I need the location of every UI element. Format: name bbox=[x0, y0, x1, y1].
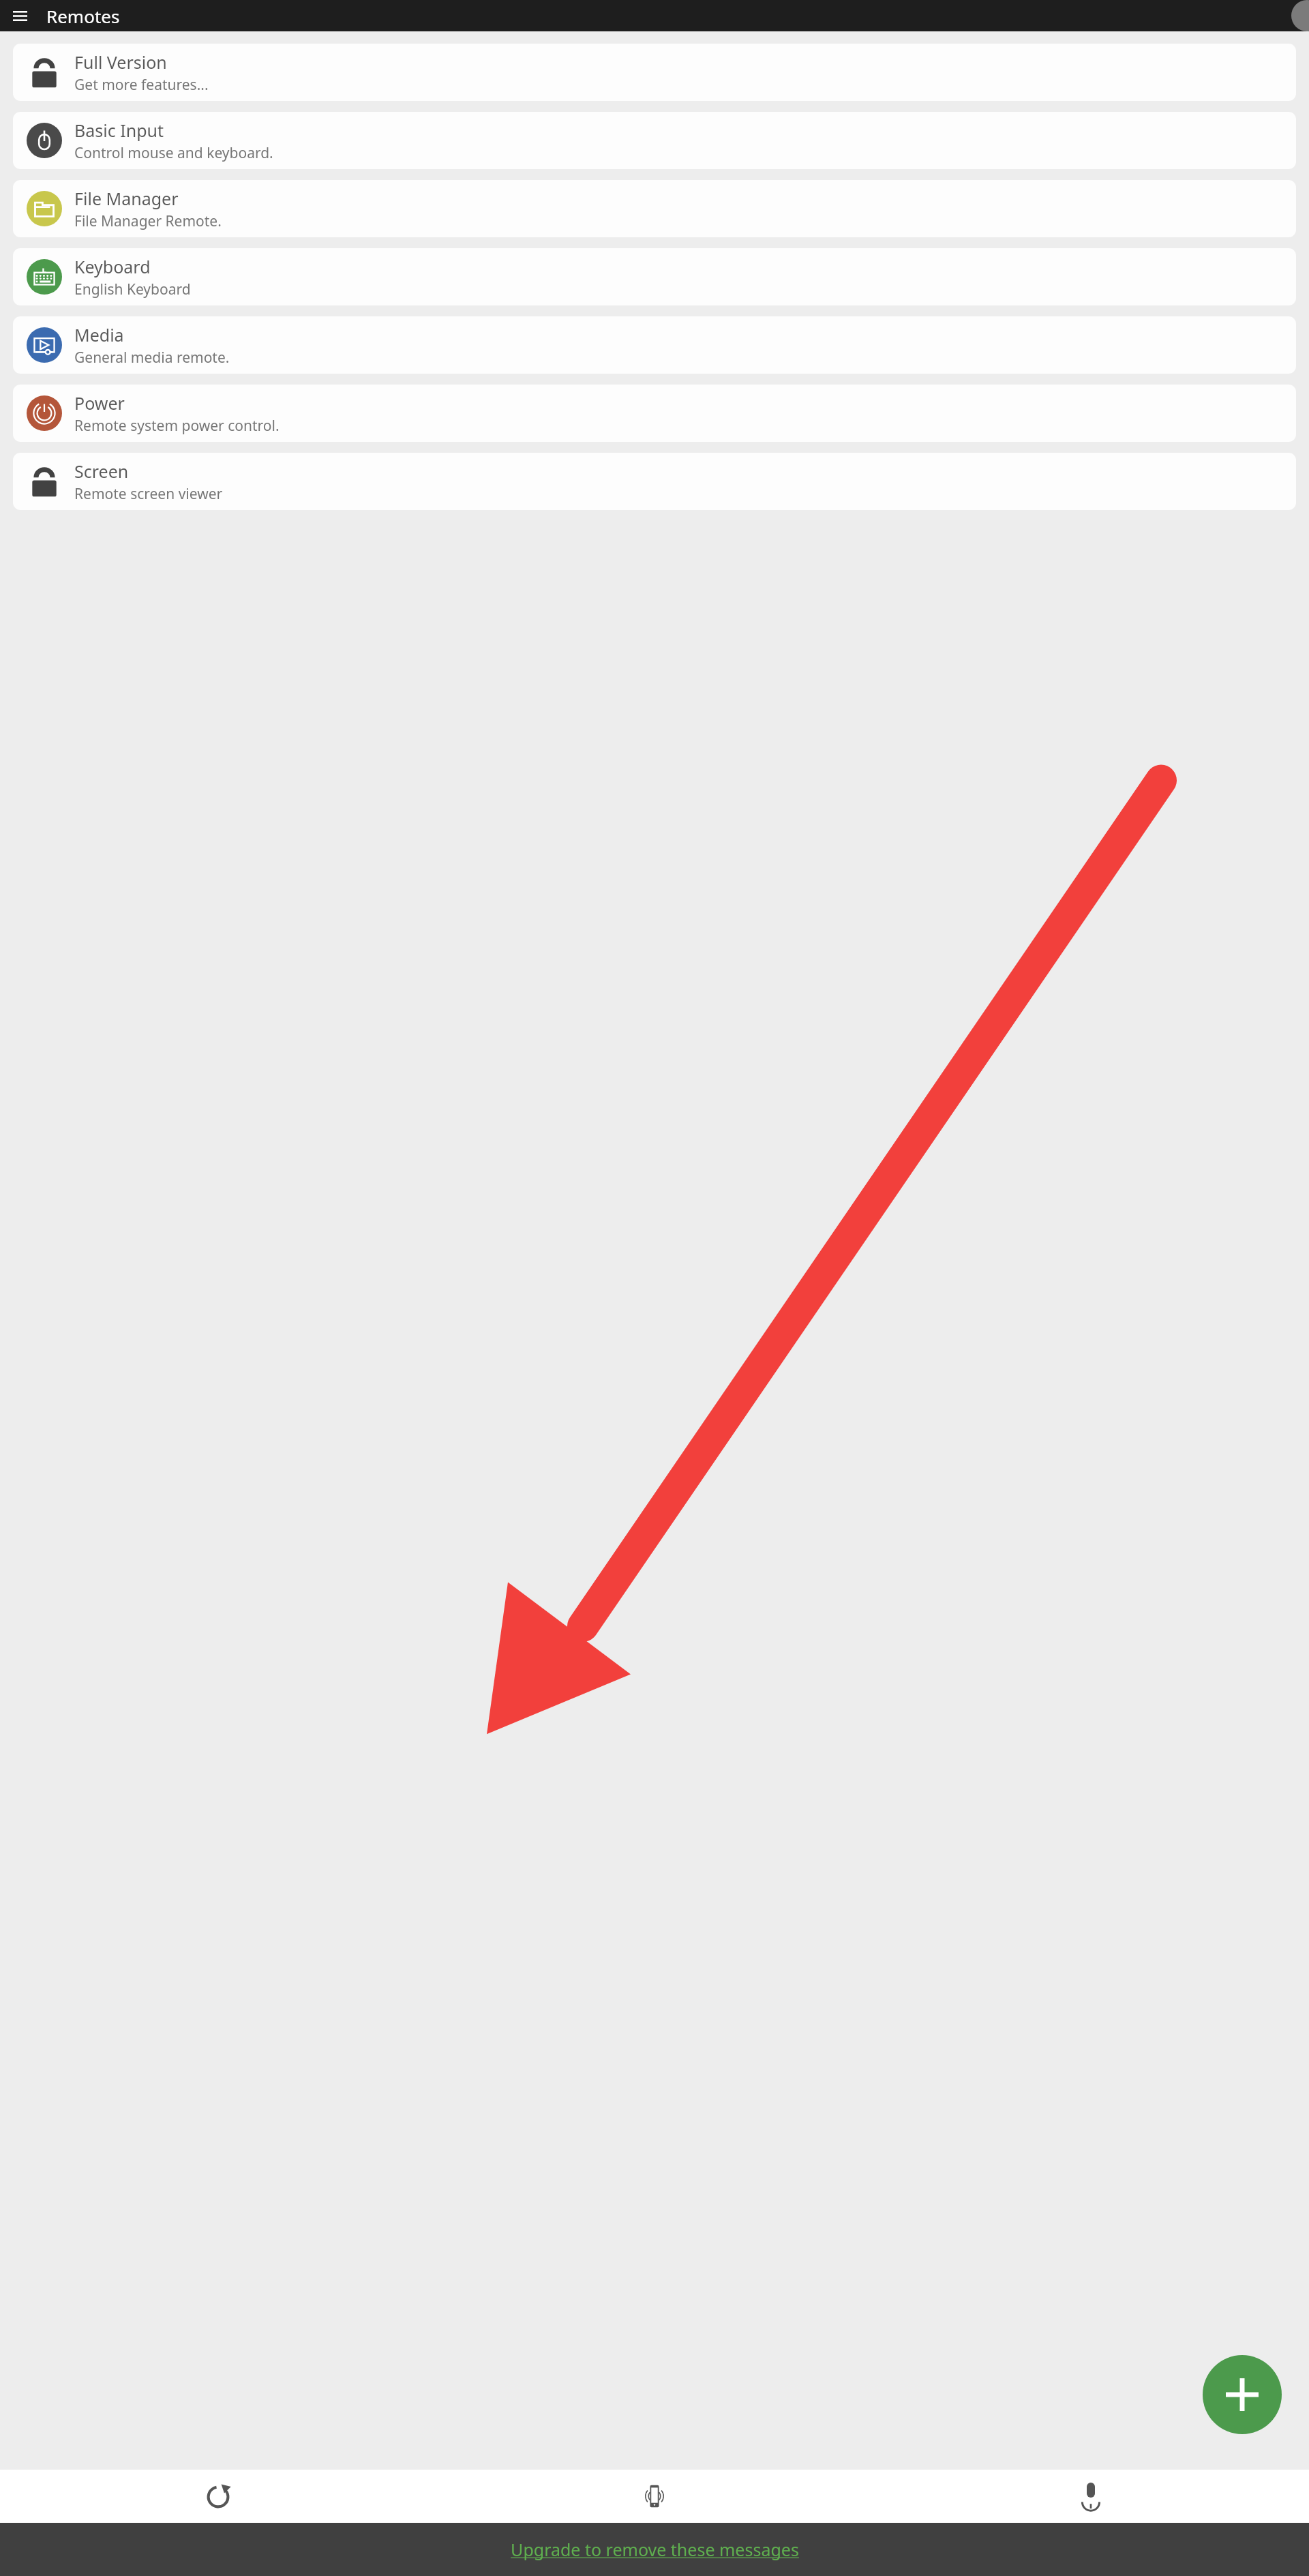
staticText: Upgrade to remove these messages bbox=[511, 2538, 799, 2561]
button[interactable]: Media bbox=[13, 316, 1296, 374]
staticText: File Manager Remote. bbox=[74, 211, 222, 231]
staticText: General media remote. bbox=[74, 348, 230, 368]
staticText: Remotes bbox=[46, 4, 120, 28]
staticText: Remote screen viewer bbox=[74, 484, 223, 504]
staticText: Media bbox=[74, 323, 124, 346]
button[interactable]: File Manager bbox=[13, 180, 1296, 237]
staticText: Keyboard bbox=[74, 255, 151, 278]
button[interactable]: Refresh bbox=[0, 2470, 436, 2523]
button[interactable]: Keyboard bbox=[13, 248, 1296, 305]
button[interactable]: Power bbox=[13, 385, 1296, 442]
button[interactable]: Full Version bbox=[13, 44, 1296, 101]
button[interactable]: Open navigation menu bbox=[5, 1, 34, 30]
button[interactable]: Upgrade to remove these messages bbox=[0, 2523, 1309, 2576]
button[interactable]: Add remote bbox=[1203, 2355, 1282, 2434]
button[interactable]: Basic Input bbox=[13, 112, 1296, 169]
staticText: Remote system power control. bbox=[74, 416, 280, 436]
button[interactable]: Vibrate bbox=[436, 2470, 873, 2523]
staticText: English Keyboard bbox=[74, 280, 191, 299]
staticText: Full Version bbox=[74, 50, 167, 74]
staticText: Get more features... bbox=[74, 75, 209, 95]
staticText: Control mouse and keyboard. bbox=[74, 143, 273, 163]
staticText: File Manager bbox=[74, 187, 179, 210]
button[interactable]: Voice bbox=[873, 2470, 1309, 2523]
button[interactable]: Screen bbox=[13, 453, 1296, 510]
staticText: Screen bbox=[74, 460, 129, 483]
staticText: Basic Input bbox=[74, 119, 164, 142]
staticText: Power bbox=[74, 391, 125, 415]
